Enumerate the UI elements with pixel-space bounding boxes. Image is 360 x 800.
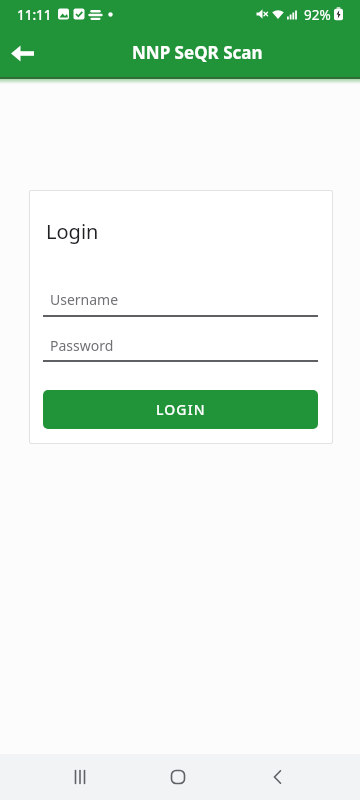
button[interactable] [60, 757, 100, 797]
button[interactable] [258, 757, 298, 797]
button[interactable] [2, 34, 44, 72]
staticText: Password [50, 336, 114, 355]
staticText: 11:11 [17, 6, 52, 24]
staticText: LOGIN [156, 400, 206, 419]
staticText: Username [50, 290, 119, 309]
button[interactable] [158, 757, 198, 797]
staticText: NNP SeQR Scan [132, 41, 263, 64]
staticText: Login [46, 218, 99, 245]
button[interactable]: LOGIN [43, 390, 318, 429]
staticText: 92% [304, 6, 331, 24]
